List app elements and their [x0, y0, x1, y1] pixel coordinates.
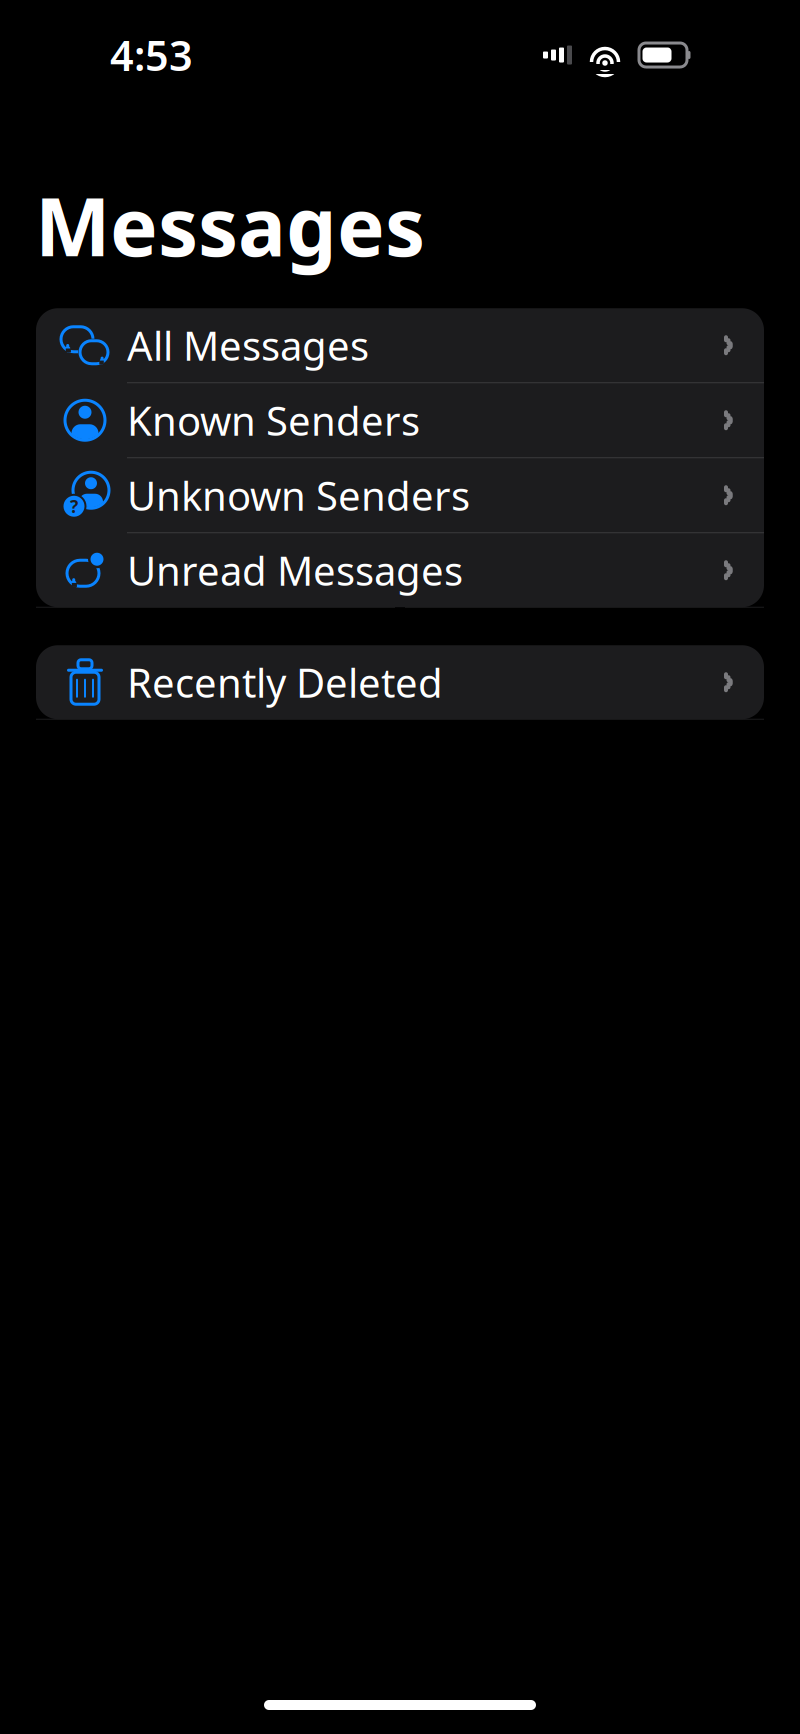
- button[interactable]: Unread Messages: [36, 533, 764, 607]
- staticText: Unread Messages: [127, 544, 463, 597]
- button[interactable]: Known Senders: [36, 383, 764, 458]
- staticText: Recently Deleted: [127, 656, 443, 709]
- button[interactable]: ?: [36, 458, 764, 533]
- staticText: ?: [70, 495, 78, 518]
- button[interactable]: All Messages: [36, 308, 764, 383]
- staticText: Messages: [35, 172, 425, 278]
- button[interactable]: Recently Deleted: [36, 645, 764, 719]
- staticText: All Messages: [127, 319, 369, 372]
- staticText: 4:53: [110, 28, 193, 82]
- staticText: Unknown Senders: [127, 469, 470, 522]
- staticText: Known Senders: [127, 394, 420, 447]
